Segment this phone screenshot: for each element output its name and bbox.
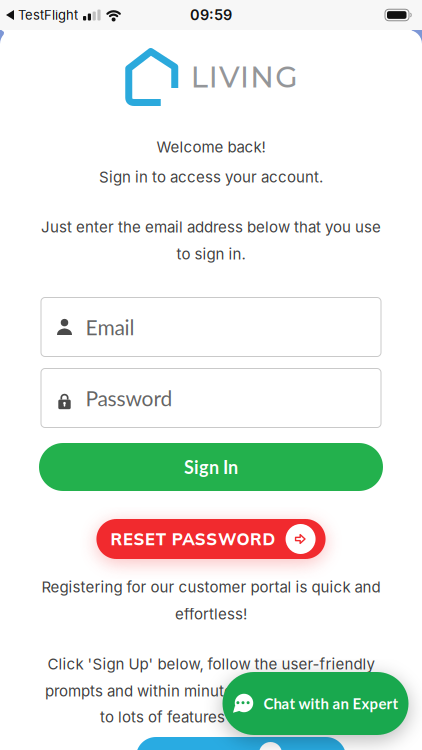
staticText: Password	[85, 385, 172, 411]
staticText: Sign In	[184, 456, 238, 478]
button[interactable]: Sign In	[39, 443, 383, 491]
button[interactable]: Password	[40, 368, 381, 428]
staticText: to lots of features and benefits.	[100, 708, 322, 726]
staticText: Chat with an Expert	[263, 694, 398, 712]
staticText: prompts and within minutes you'll have a…	[45, 682, 377, 700]
staticText: Just enter the email address below that …	[41, 218, 381, 236]
button[interactable]: RESET PASSWORD	[96, 519, 325, 559]
staticText: 09:59	[190, 6, 232, 24]
staticText: RESET PASSWORD	[110, 529, 275, 549]
staticText: TestFlight	[18, 7, 78, 23]
staticText: effortless!	[175, 605, 247, 623]
staticText: Email	[85, 314, 134, 340]
staticText: LIVING	[191, 59, 297, 95]
staticText: to sign in.	[176, 245, 245, 263]
staticText: Welcome back!	[156, 138, 265, 156]
button[interactable]: Email	[40, 297, 381, 357]
staticText: Click 'Sign Up' below, follow the user-f…	[47, 655, 374, 673]
staticText: Registering for our customer portal is q…	[41, 578, 380, 596]
button[interactable]: Chat with an Expert	[222, 672, 408, 735]
button[interactable]: Sign Up	[136, 737, 346, 750]
staticText: Sign in to access your account.	[99, 168, 323, 186]
